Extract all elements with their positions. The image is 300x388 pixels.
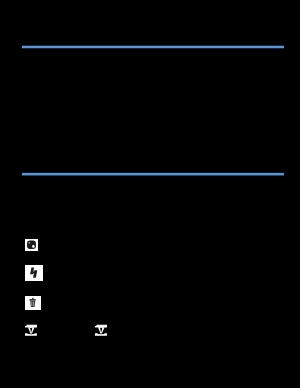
button[interactable]: Award xyxy=(25,324,37,336)
button[interactable]: Photo xyxy=(25,239,284,254)
button[interactable]: Flash xyxy=(25,265,284,281)
other: Delete xyxy=(25,296,41,310)
button[interactable]: Delete xyxy=(25,296,284,311)
button[interactable]: Section divider xyxy=(22,171,284,177)
button[interactable]: Section divider xyxy=(22,44,284,50)
button[interactable]: Rank xyxy=(95,324,107,336)
other: Flash xyxy=(25,265,43,281)
other: Photo xyxy=(25,239,38,251)
staticText: Recent activity xyxy=(22,41,97,56)
